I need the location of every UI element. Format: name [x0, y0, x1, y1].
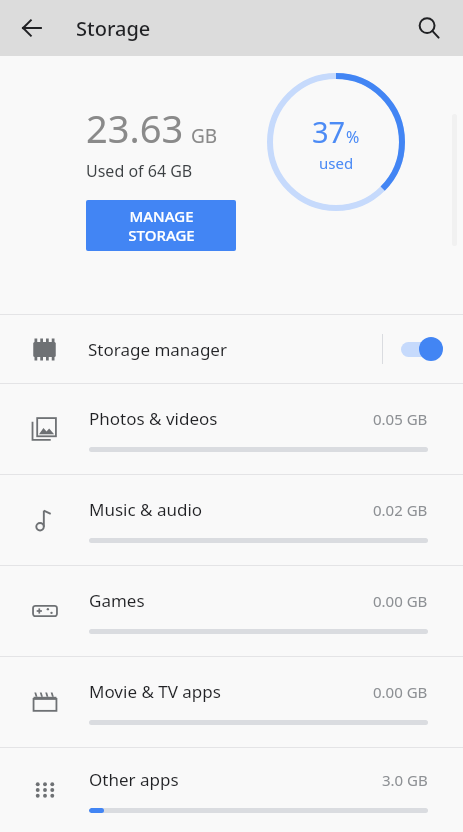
- staticText: Used of 64 GB: [86, 160, 193, 182]
- button[interactable]: Music & audio: [0, 475, 463, 565]
- staticText: GB: [191, 123, 218, 149]
- staticText: MANAGE STORAGE: [128, 206, 195, 245]
- button[interactable]: Photos & videos: [0, 384, 463, 474]
- button[interactable]: MANAGE STORAGE: [86, 200, 236, 251]
- staticText: Music & audio: [89, 498, 203, 521]
- staticText: 37: [312, 112, 346, 151]
- staticText: 0.00 GB: [373, 682, 428, 702]
- staticText: Games: [89, 589, 145, 612]
- staticText: 0.05 GB: [373, 409, 428, 429]
- button[interactable]: Back: [8, 4, 56, 52]
- staticText: Storage manager: [88, 338, 227, 361]
- staticText: 0.02 GB: [373, 500, 428, 520]
- staticText: used: [319, 153, 354, 173]
- button[interactable]: Search: [405, 4, 453, 52]
- button[interactable]: Games: [0, 566, 463, 656]
- staticText: Movie & TV apps: [89, 680, 221, 703]
- button[interactable]: Other apps: [0, 748, 463, 832]
- staticText: 23.63: [86, 102, 184, 154]
- staticText: 0.00 GB: [373, 591, 428, 611]
- staticText: Storage: [76, 15, 151, 42]
- button[interactable]: Storage manager toggle: [383, 315, 463, 383]
- staticText: 3.0 GB: [382, 770, 428, 790]
- button[interactable]: Storage manager: [0, 315, 463, 383]
- staticText: Other apps: [89, 768, 179, 791]
- button[interactable]: Movie & TV apps: [0, 657, 463, 747]
- staticText: %: [346, 126, 360, 148]
- staticText: Photos & videos: [89, 407, 218, 430]
